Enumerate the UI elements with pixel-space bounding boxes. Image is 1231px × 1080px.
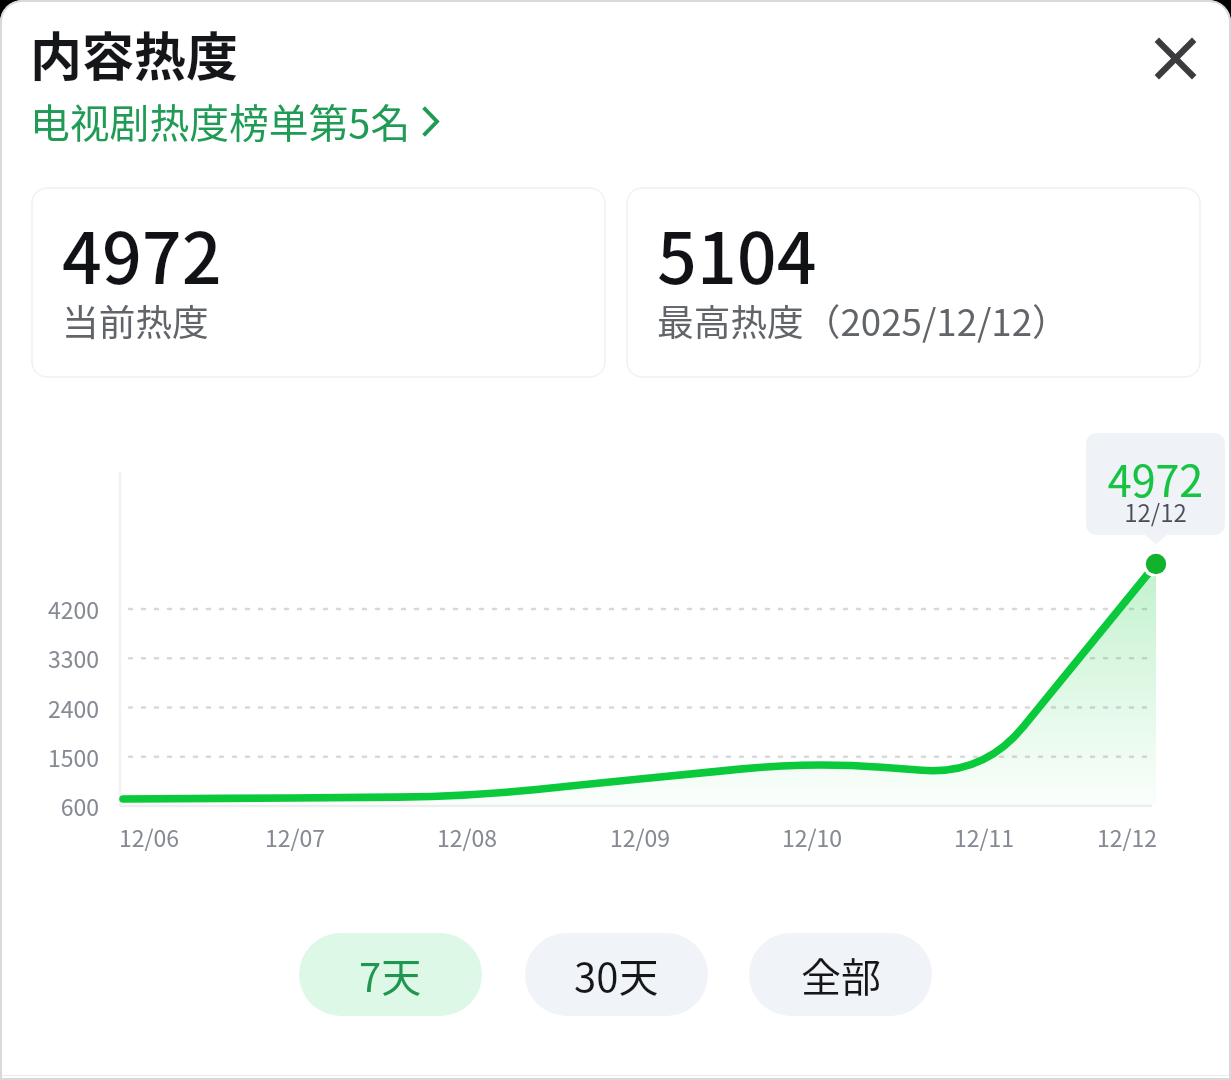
staticText: 4972	[1086, 447, 1225, 509]
button[interactable]: 全部	[749, 933, 932, 1016]
button[interactable]: 电视剧热度榜单第5名	[30, 92, 439, 150]
staticText: 12/09	[585, 820, 695, 853]
staticText: 12/12	[1086, 494, 1225, 529]
staticText: 7天	[359, 946, 422, 1004]
button[interactable]: 5104	[626, 187, 1201, 378]
staticText: 600	[19, 789, 99, 822]
button[interactable]: Close	[1128, 11, 1222, 105]
staticText: 2400	[19, 691, 99, 724]
staticText: 12/10	[757, 820, 867, 853]
staticText: 全部	[801, 946, 881, 1004]
staticText: 12/08	[412, 820, 522, 853]
button[interactable]: 4972	[31, 187, 606, 378]
button[interactable]: 7天	[299, 933, 482, 1016]
staticText: 30天	[574, 946, 659, 1004]
staticText: 12/11	[929, 820, 1039, 853]
staticText: 4200	[19, 592, 99, 625]
staticText: 1500	[19, 740, 99, 773]
staticText: 3300	[19, 641, 99, 674]
staticText: 4972	[62, 203, 222, 304]
staticText: 内容热度	[30, 16, 239, 91]
staticText: 电视剧热度榜单第5名	[30, 92, 411, 150]
staticText: 12/07	[240, 820, 350, 853]
button[interactable]: 30天	[525, 933, 708, 1016]
staticText: 当前热度	[62, 293, 209, 346]
staticText: 最高热度（2025/12/12）	[657, 293, 1069, 346]
staticText: 12/12	[1072, 820, 1182, 853]
staticText: 5104	[657, 203, 817, 304]
staticText: 12/06	[94, 820, 204, 853]
